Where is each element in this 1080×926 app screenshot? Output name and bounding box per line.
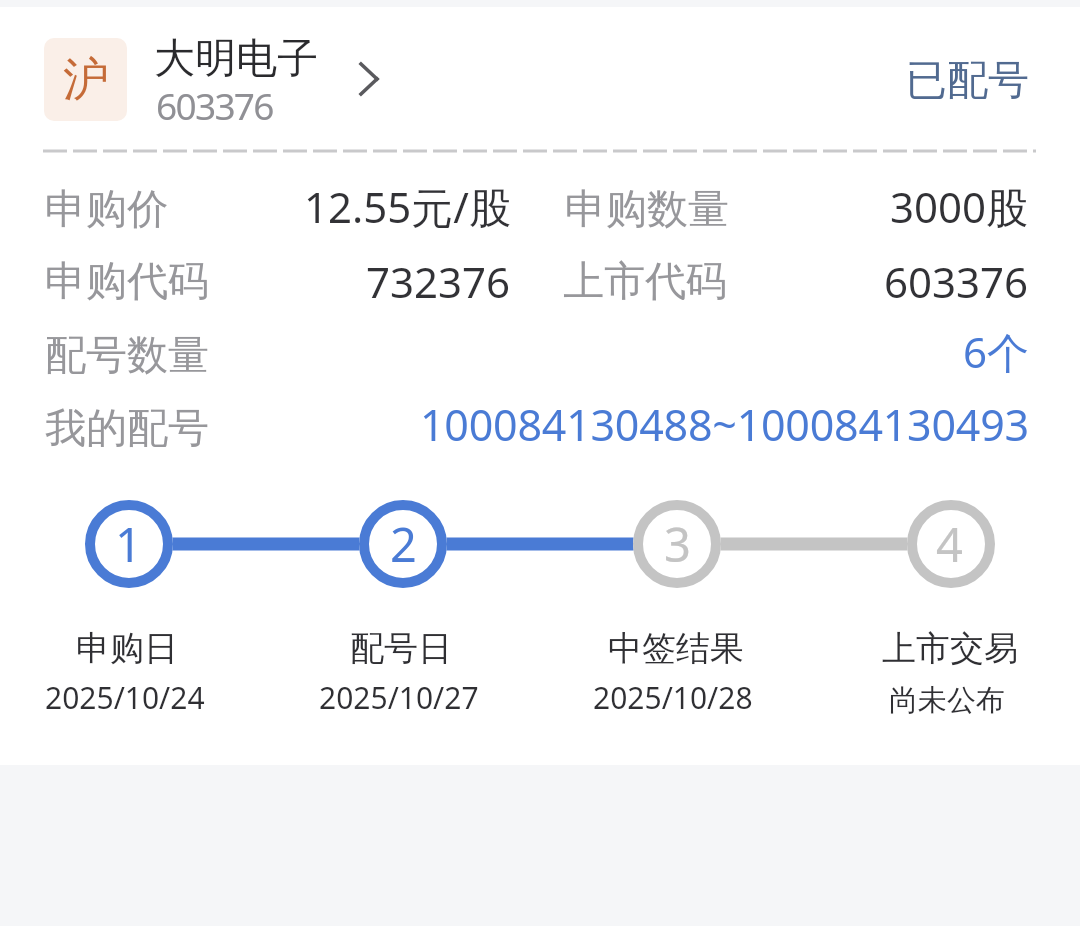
- staticText: 大明电子: [154, 33, 318, 85]
- button[interactable]: 配号数量: [0, 325, 1080, 383]
- staticText: 4: [936, 512, 963, 576]
- staticText: 沪: [63, 51, 109, 109]
- staticText: 2025/10/24: [45, 677, 205, 718]
- staticText: 12.55元/股: [304, 178, 511, 235]
- button[interactable]: 沪: [0, 7, 440, 151]
- staticText: 上市代码: [563, 256, 727, 308]
- staticText: 6个: [963, 323, 1030, 380]
- staticText: 2025/10/27: [319, 677, 479, 718]
- staticText: 2: [390, 512, 417, 576]
- staticText: 申购数量: [565, 184, 729, 236]
- button[interactable]: 我的配号: [0, 398, 1080, 456]
- staticText: 732376: [366, 253, 511, 310]
- staticText: 1: [115, 512, 142, 576]
- staticText: 我的配号: [45, 403, 209, 455]
- staticText: 尚未公布: [889, 682, 1005, 719]
- staticText: 配号日: [350, 627, 452, 670]
- staticText: 603376: [156, 80, 273, 130]
- staticText: 3: [664, 512, 691, 576]
- staticText: 申购代码: [45, 256, 209, 308]
- staticText: 配号数量: [45, 330, 209, 382]
- staticText: 上市交易: [882, 627, 1018, 670]
- other: 查看股票详情: [344, 47, 408, 111]
- staticText: 2025/10/28: [593, 677, 753, 718]
- staticText: 3000股: [890, 178, 1029, 235]
- staticText: 100084130488~100084130493: [420, 395, 1029, 453]
- staticText: 中签结果: [608, 627, 744, 670]
- button[interactable]: 已配号: [880, 38, 1056, 122]
- staticText: 603376: [884, 253, 1029, 310]
- staticText: 已配号: [906, 55, 1029, 107]
- staticText: 申购价: [45, 184, 168, 236]
- staticText: 申购日: [76, 627, 178, 670]
